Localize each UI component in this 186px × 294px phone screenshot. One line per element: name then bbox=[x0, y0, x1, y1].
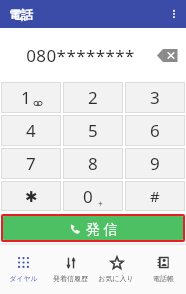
staticText: 発着信履歴 bbox=[53, 274, 88, 283]
staticText: + bbox=[98, 198, 103, 206]
staticText: 6 bbox=[150, 119, 160, 142]
staticText: 2 bbox=[88, 86, 98, 109]
staticText: 4 bbox=[26, 119, 36, 142]
button[interactable]: # bbox=[125, 181, 185, 211]
button[interactable]: 2 bbox=[63, 82, 123, 113]
staticText: 9 bbox=[150, 152, 160, 175]
button[interactable]: 電話帳 bbox=[140, 244, 186, 294]
button[interactable]: 発着信履歴 bbox=[47, 244, 93, 294]
button[interactable]: お気に入り bbox=[93, 244, 139, 294]
staticText: 3 bbox=[150, 86, 160, 109]
staticText: ✱ bbox=[25, 188, 38, 205]
button[interactable]: 7 bbox=[1, 148, 61, 179]
button[interactable]: More options bbox=[162, 2, 186, 26]
staticText: 電話 bbox=[9, 7, 33, 22]
button[interactable]: 9 bbox=[125, 148, 185, 179]
staticText: 5 bbox=[88, 119, 98, 142]
button[interactable]: ✱ bbox=[1, 181, 61, 211]
staticText: 080******** bbox=[8, 44, 153, 67]
staticText: 0 bbox=[83, 185, 93, 208]
button[interactable]: 8 bbox=[63, 148, 123, 179]
button[interactable]: 3 bbox=[125, 82, 185, 113]
staticText: 発 信 bbox=[86, 219, 118, 238]
button[interactable]: 1 bbox=[1, 82, 61, 113]
staticText: 7 bbox=[26, 152, 36, 175]
staticText: # bbox=[150, 186, 160, 206]
staticText: 電話帳 bbox=[153, 274, 174, 283]
button[interactable]: 5 bbox=[63, 115, 123, 146]
button[interactable]: ダイヤル bbox=[0, 244, 46, 294]
button[interactable]: Backspace bbox=[153, 42, 183, 68]
staticText: ダイヤル bbox=[9, 274, 38, 283]
button[interactable]: 0 bbox=[63, 181, 123, 211]
staticText: 8 bbox=[88, 152, 98, 175]
button[interactable]: 発 信 bbox=[3, 216, 183, 240]
button[interactable]: 6 bbox=[125, 115, 185, 146]
staticText: お気に入り bbox=[98, 274, 134, 283]
button[interactable]: 4 bbox=[1, 115, 61, 146]
staticText: 1 bbox=[21, 86, 31, 109]
